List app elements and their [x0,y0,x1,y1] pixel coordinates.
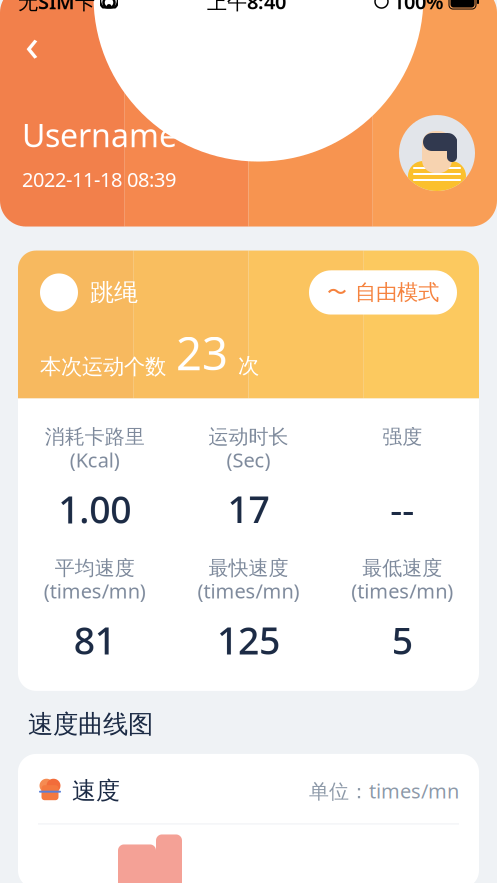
staticText: 〜 [327,280,347,305]
staticText: (times/mn) [197,577,299,604]
staticText: 81 [74,615,116,665]
staticText: (times/mn) [351,577,453,604]
staticText: 最低速度 [362,556,442,580]
staticText: 上午8:40 [207,0,286,15]
staticText: 跳绳 [90,278,138,307]
staticText: 100% [393,0,444,15]
staticText: 强度 [382,425,422,449]
staticText: (Sec) [226,446,270,473]
staticText: ‹ [25,13,39,74]
staticText: 最快速度 [208,556,288,580]
staticText: 2022-11-18 08:39 [22,166,176,193]
staticText: (Kcal) [70,446,120,473]
staticText: 单位：times/mn [309,777,459,804]
staticText: Username [22,113,177,156]
staticText: 1.00 [58,484,131,534]
staticText: 自由模式 [355,279,439,306]
staticText: 125 [217,615,280,665]
button[interactable]: Back [10,22,54,66]
staticText: 运动时长 [208,425,288,449]
staticText: 无SIM卡 [18,0,95,15]
staticText: 速度 [72,776,120,805]
staticText: -- [390,484,414,534]
staticText: 23 [176,323,228,383]
staticText: 17 [227,484,269,534]
button[interactable]: 〜 [309,270,457,315]
staticText: (times/mn) [44,577,146,604]
staticText: 平均速度 [55,556,135,580]
staticText: 次 [238,353,259,379]
staticText: 本次运动个数 [40,354,166,380]
staticText: 速度曲线图 [28,709,153,740]
staticText: 5 [392,615,413,665]
staticText: 消耗卡路里 [45,425,145,449]
